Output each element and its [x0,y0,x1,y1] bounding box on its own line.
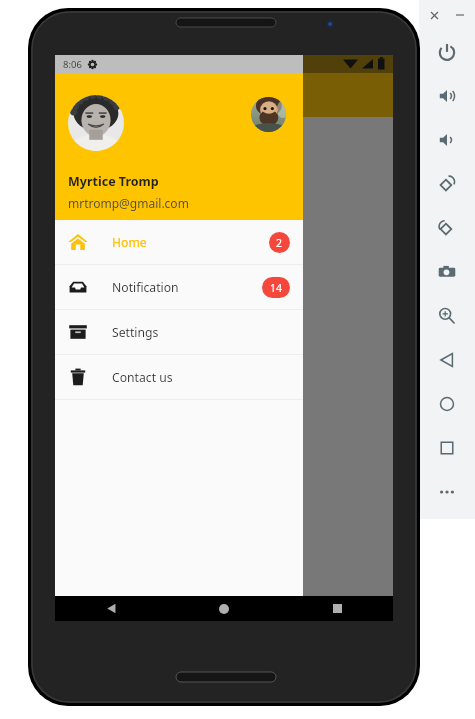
staticText: Settings [112,324,159,341]
button[interactable]: Rotate left [425,162,469,206]
button[interactable]: Zoom [425,294,469,338]
button[interactable]: Switch account [251,97,286,132]
staticText: Home [112,234,147,251]
button[interactable]: Overview [425,426,469,470]
button[interactable]: Home [55,220,303,264]
button[interactable]: Minimize [451,6,469,24]
button[interactable]: Profile photo [55,73,303,220]
button[interactable]: Rotate right [425,206,469,250]
staticText: Contact us [112,369,173,386]
button[interactable]: Volume up [425,74,469,118]
button[interactable]: Power [425,30,469,74]
button[interactable]: Recents [321,596,353,621]
button[interactable]: Settings [55,310,303,354]
button[interactable]: Contact us [55,355,303,399]
staticText: mrtromp@gmail.com [68,195,189,211]
button[interactable]: Volume down [425,118,469,162]
staticText: 14 [270,281,283,295]
button[interactable]: Home [208,596,240,621]
staticText: Notification [112,279,179,296]
staticText: 8:06 [63,58,82,71]
button[interactable]: Back [95,596,127,621]
button[interactable]: More [425,470,469,514]
button[interactable]: Take screenshot [425,250,469,294]
button[interactable]: Home [425,382,469,426]
staticText: Myrtice Tromp [68,173,159,190]
button[interactable]: Close [425,6,443,24]
button[interactable]: Notification [55,265,303,309]
button[interactable]: Back [425,338,469,382]
button[interactable]: Profile photo [68,95,124,151]
staticText: 2 [276,236,283,250]
